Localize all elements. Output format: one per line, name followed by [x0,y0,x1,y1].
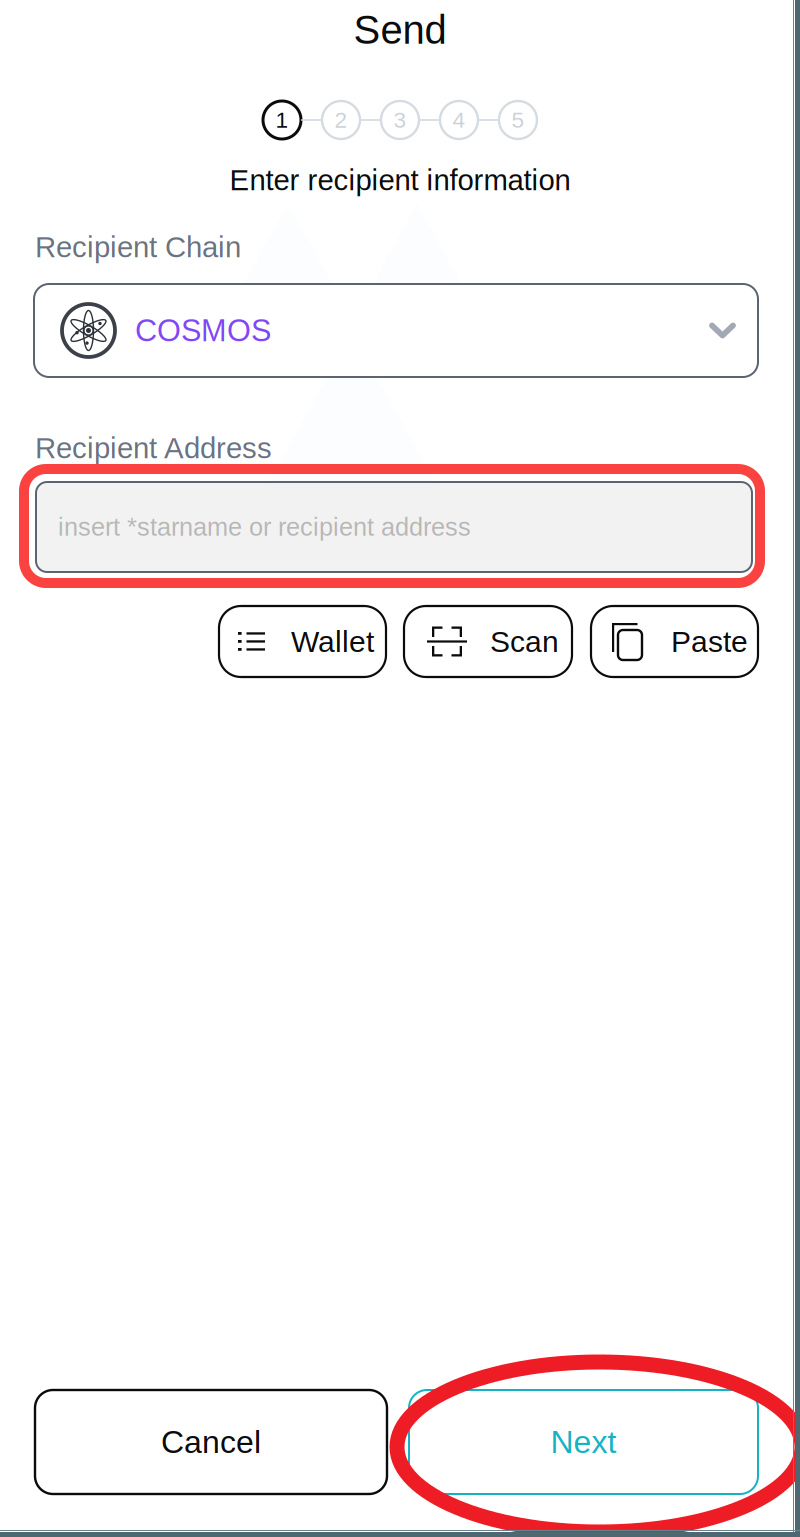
staticText: Send [353,8,446,52]
button[interactable]: Cancel [35,1390,387,1494]
button[interactable]: Next [409,1390,758,1494]
button[interactable]: Scan [404,606,572,677]
staticText: Next [550,1424,616,1460]
button[interactable]: Paste [591,606,758,677]
staticText: Scan [490,625,559,658]
button[interactable]: Wallet [219,606,386,677]
staticText: Enter recipient information [229,164,570,196]
staticText: Wallet [291,625,374,658]
staticText: 1 [275,107,288,133]
staticText: COSMOS [135,313,271,348]
staticText: Paste [671,625,748,658]
staticText: 2 [334,107,347,133]
staticText: Recipient Address [35,432,272,464]
staticText: 3 [393,107,406,133]
staticText: 5 [511,107,524,133]
staticText: 4 [452,107,465,133]
button[interactable]: COSMOS [34,284,758,377]
staticText: Recipient Chain [35,231,241,263]
staticText: insert *starname or recipient address [58,513,471,541]
staticText: Cancel [161,1424,261,1460]
button[interactable]: insert *starname or recipient address [36,482,752,572]
